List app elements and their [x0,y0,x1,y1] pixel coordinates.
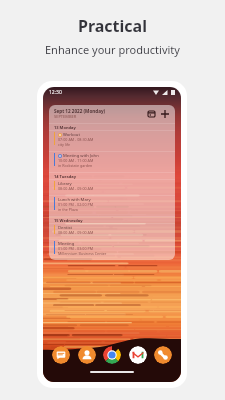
button[interactable]: Meeting with John [49,152,175,172]
staticText: Library [58,181,72,186]
staticText: in Rockstate garden [58,163,93,168]
staticText: Enhance your productivity [45,42,180,57]
staticText: 08:00 AM - 09:00 AM [58,230,94,235]
staticText: Lunch with Mary [58,197,91,202]
staticText: Sept 12 2022 (Monday) [54,108,106,114]
staticText: 10:00 AM - 11:00 AM [58,158,94,163]
button[interactable]: Lunch with Mary [49,196,175,216]
button[interactable]: Phone [154,346,172,364]
staticText: 07:00 AM - 08:30 AM [58,137,94,142]
button[interactable]: Gmail [129,346,147,364]
staticText: 01:00 PM - 03:00 PM [58,246,94,251]
button[interactable]: Messages [52,346,70,364]
staticText: Dentist [58,225,73,230]
button[interactable]: Library [49,180,175,195]
button[interactable]: Chrome [103,346,121,364]
staticText: SEPTEMBER [54,114,77,119]
staticText: 13 Monday [54,125,76,130]
staticText: 01:00 PM - 02:00 PM [58,202,94,207]
staticText: Meeting with John [63,153,99,158]
staticText: 08:00 AM - 09:00 AM [58,186,94,191]
staticText: 15 Wednesday [54,218,83,223]
staticText: city life [58,142,71,147]
button[interactable]: Calendar [145,107,158,120]
button[interactable]: Contacts [78,346,96,364]
staticText: 14 Tuesday [54,174,76,179]
staticText: Meeting [58,241,75,246]
staticText: Practical [78,15,147,37]
staticText: Workout [63,132,80,137]
button[interactable]: Workout [49,131,175,151]
button[interactable]: Dentist [49,224,175,239]
staticText: Millennium Business Center [58,251,107,256]
button[interactable]: Meeting [49,240,175,260]
staticText: in the Plaza [58,207,78,212]
button[interactable]: Add event [158,107,171,120]
staticText: 12:30 [49,89,62,96]
